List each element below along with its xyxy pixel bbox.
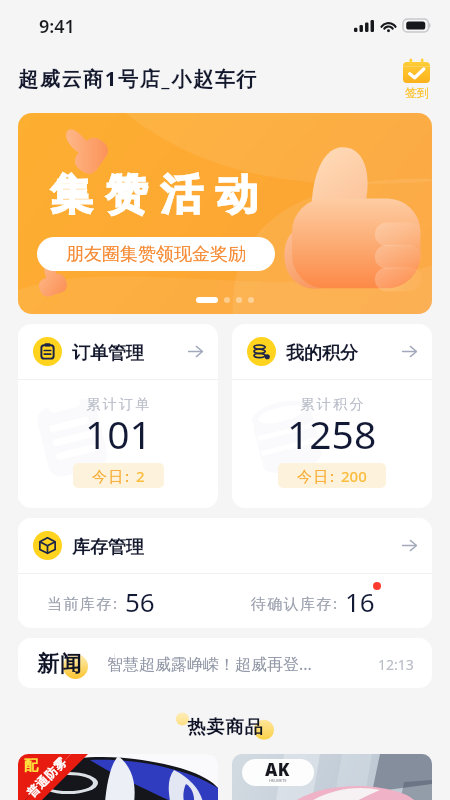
button[interactable]: AK <box>232 754 432 800</box>
button[interactable]: 签到 <box>399 56 434 102</box>
staticText: 热卖商品 <box>187 716 263 739</box>
staticText: 1258 <box>287 407 377 460</box>
staticText: 普通防雾 <box>23 754 69 800</box>
staticText: 累计订单 <box>85 396 151 414</box>
button[interactable]: 库存管理 <box>18 518 432 628</box>
staticText: 56 <box>125 584 155 619</box>
button[interactable]: 集赞活动 <box>18 113 432 314</box>
staticText: 今日: <box>297 466 336 486</box>
button[interactable]: 新闻 <box>18 638 432 688</box>
staticText: 我的积分 <box>286 342 358 365</box>
button[interactable]: 配 <box>18 754 218 800</box>
staticText: 今日: <box>92 466 131 486</box>
staticText: 2 <box>136 466 145 486</box>
staticText: 累计积分 <box>299 396 365 414</box>
staticText: AK <box>265 759 291 781</box>
staticText: 待确认库存: <box>251 593 339 613</box>
staticText: 集赞活动 <box>44 169 264 222</box>
staticText: 9:41 <box>39 14 75 39</box>
staticText: 101 <box>85 407 152 460</box>
staticText: 朋友圈集赞领现金奖励 <box>66 243 246 266</box>
staticText: 200 <box>341 466 367 486</box>
button[interactable]: 订单管理 <box>18 324 218 508</box>
staticText: 当前库存: <box>47 593 119 613</box>
staticText: 订单管理 <box>72 342 144 365</box>
staticText: 智慧超威露峥嵘！超威再登... <box>107 653 312 675</box>
staticText: 超威云商1号店_小赵车行 <box>18 65 259 92</box>
staticText: 签到 <box>405 85 429 100</box>
staticText: 12:13 <box>378 655 414 674</box>
staticText: 库存管理 <box>72 536 144 559</box>
button[interactable]: 我的积分 <box>232 324 432 508</box>
staticText: HELMETS <box>269 778 287 782</box>
staticText: 配 <box>24 757 38 775</box>
staticText: 新闻 <box>37 650 82 678</box>
staticText: 16 <box>345 584 375 619</box>
